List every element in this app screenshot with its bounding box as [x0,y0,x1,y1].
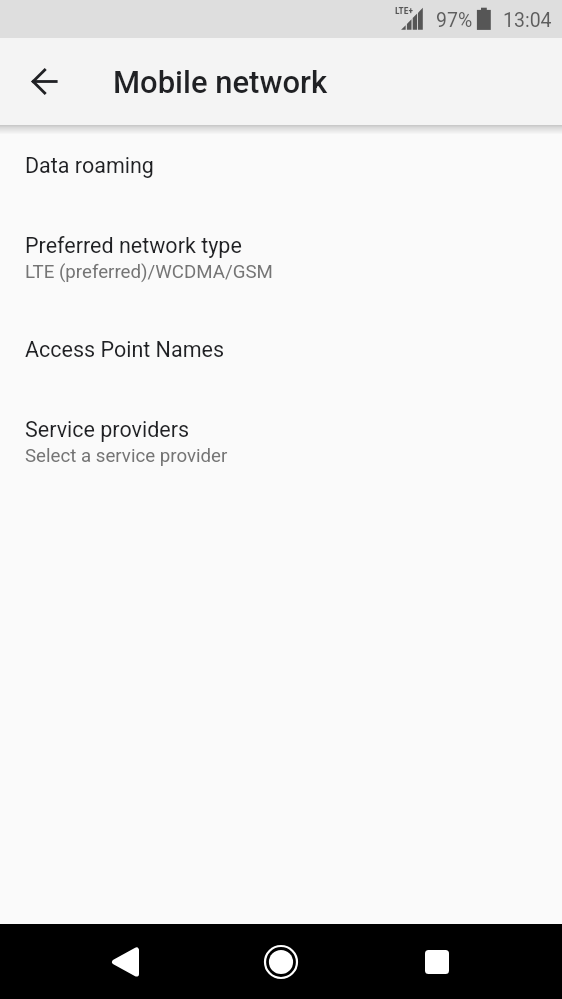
staticText: Access Point Names [25,337,225,362]
button[interactable]: Access Point Names [0,310,562,389]
button[interactable]: Service providers [0,389,562,495]
button[interactable]: Recent apps [374,924,500,999]
button[interactable]: Back [62,924,187,999]
button[interactable]: Home [218,924,344,999]
staticText: Mobile network [113,64,328,100]
staticText: Data roaming [25,153,154,178]
button[interactable]: Data roaming [0,126,562,205]
staticText: Service providers [25,417,190,442]
staticText: Select a service provider [25,445,228,467]
staticText: Preferred network type [25,233,242,258]
staticText: LTE (preferred)/WCDMA/GSM [25,261,273,283]
staticText: LTE+ [395,5,413,16]
button[interactable]: Preferred network type [0,205,562,311]
button[interactable]: Navigate up [13,37,77,125]
staticText: 13:04 [503,9,552,32]
staticText: 97% [436,9,473,32]
